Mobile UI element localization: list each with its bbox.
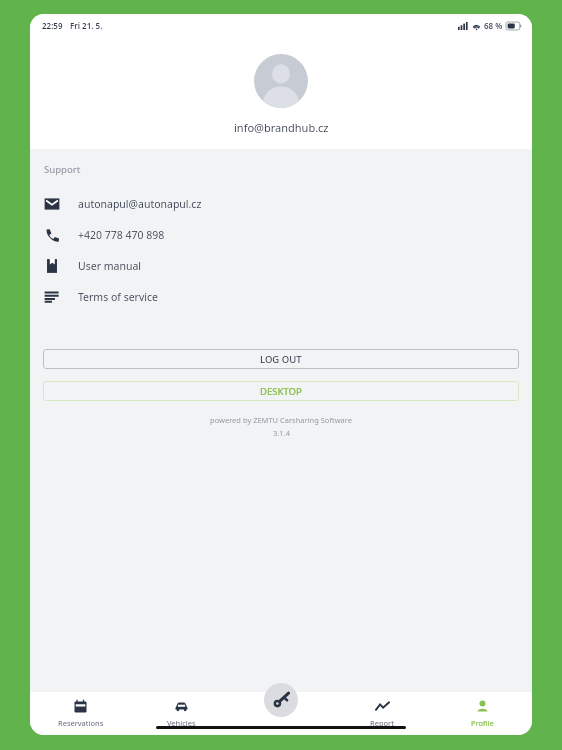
staticText: Reservations (58, 718, 104, 728)
staticText: 3.1.4 (273, 428, 290, 438)
staticText: 68 % (484, 20, 503, 31)
staticText: LOG OUT (260, 353, 302, 366)
staticText: Terms of service (78, 290, 158, 304)
button[interactable]: DESKTOP (43, 381, 519, 401)
staticText: DESKTOP (260, 385, 302, 398)
button[interactable]: Report (332, 692, 432, 735)
button[interactable]: Terms of service (30, 281, 532, 312)
button[interactable]: Vehicles (131, 692, 232, 735)
staticText: autonapul@autonapul.cz (78, 197, 202, 211)
staticText: +420 778 470 898 (78, 228, 165, 242)
staticText: Support (44, 163, 81, 176)
button[interactable]: autonapul@autonapul.cz (30, 188, 532, 219)
button[interactable]: LOG OUT (43, 349, 519, 369)
button[interactable]: Reservations (30, 692, 131, 735)
staticText: Report (370, 718, 394, 728)
button[interactable]: Unlock vehicle (264, 683, 298, 717)
staticText: Profile (471, 718, 494, 728)
staticText: powered by ZEMTU Carsharing Software (210, 415, 352, 425)
staticText: info@brandhub.cz (234, 120, 329, 135)
button[interactable]: +420 778 470 898 (30, 219, 532, 250)
staticText: Vehicles (167, 718, 196, 728)
button[interactable]: User manual (30, 250, 532, 281)
staticText: User manual (78, 259, 141, 273)
button[interactable]: Profile (432, 692, 532, 735)
staticText: Fri 21. 5. (70, 20, 103, 31)
staticText: 22:59 (42, 20, 63, 31)
